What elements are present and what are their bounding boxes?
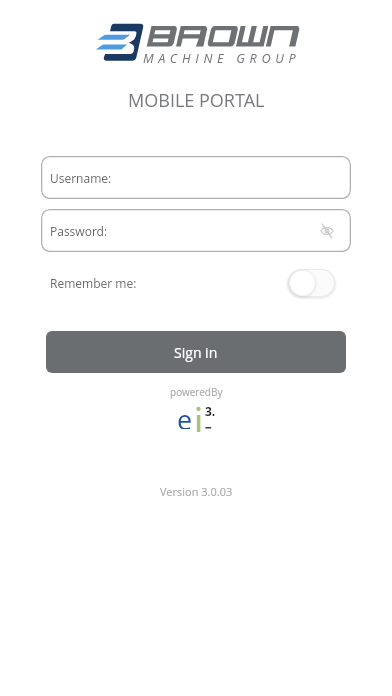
button[interactable]: Remember me toggle xyxy=(288,269,335,297)
staticText: 3. xyxy=(205,403,216,419)
button[interactable]: Sign in xyxy=(46,331,346,373)
staticText: Sign in xyxy=(174,343,218,362)
staticText: Remember me: xyxy=(50,275,137,291)
staticText: Version 3.0.03 xyxy=(160,484,233,499)
button[interactable]: Username: xyxy=(41,156,351,199)
staticText: poweredBy xyxy=(170,385,223,399)
staticText: MOBILE PORTAL xyxy=(128,88,265,113)
button[interactable]: Show password xyxy=(316,220,338,242)
staticText: Password: xyxy=(50,223,108,239)
staticText: e xyxy=(177,401,193,429)
staticText: Username: xyxy=(50,170,112,186)
button[interactable]: Password: xyxy=(41,209,351,252)
button[interactable]: ei3 powered by xyxy=(178,405,214,433)
staticText: MACHINE GROUP xyxy=(143,49,301,63)
